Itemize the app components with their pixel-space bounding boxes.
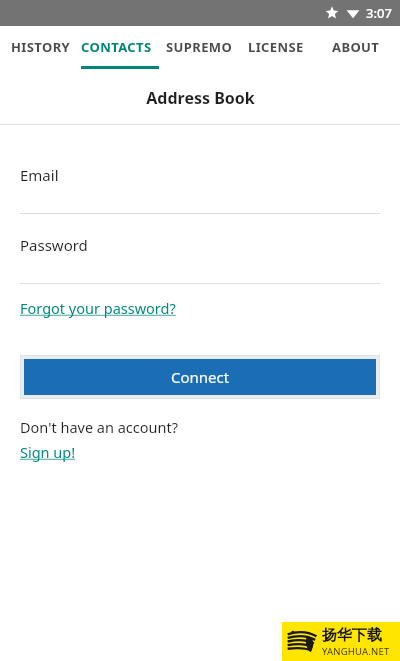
button[interactable]: Email bbox=[20, 165, 380, 213]
staticText: Sign up! bbox=[20, 442, 76, 462]
staticText: Don't have an account? bbox=[20, 417, 178, 437]
staticText: CONTACTS bbox=[81, 38, 152, 56]
staticText: YANGHUA.NET bbox=[322, 645, 390, 658]
staticText: LICENSE bbox=[248, 38, 304, 56]
staticText: SUPREMO bbox=[166, 38, 233, 56]
button[interactable]: LICENSE bbox=[248, 26, 312, 72]
staticText: ABOUT bbox=[332, 38, 380, 56]
button[interactable]: HISTORY bbox=[11, 26, 73, 72]
staticText: Forgot your password? bbox=[20, 298, 176, 318]
button[interactable]: ABOUT bbox=[332, 26, 387, 72]
staticText: Email bbox=[20, 165, 59, 185]
staticText: Connect bbox=[171, 367, 230, 387]
button[interactable]: SUPREMO bbox=[166, 26, 236, 72]
staticText: HISTORY bbox=[11, 38, 71, 56]
staticText: Password bbox=[20, 235, 88, 255]
staticText: 3:07 bbox=[366, 4, 392, 22]
staticText: 扬华下载 bbox=[322, 626, 382, 645]
button[interactable]: Sign up! bbox=[20, 442, 76, 462]
button[interactable]: CONTACTS bbox=[81, 26, 159, 72]
button[interactable]: Connect bbox=[24, 359, 376, 395]
button[interactable]: Password bbox=[20, 235, 380, 283]
staticText: Address Book bbox=[146, 87, 255, 109]
button[interactable]: Forgot your password? bbox=[20, 298, 176, 318]
